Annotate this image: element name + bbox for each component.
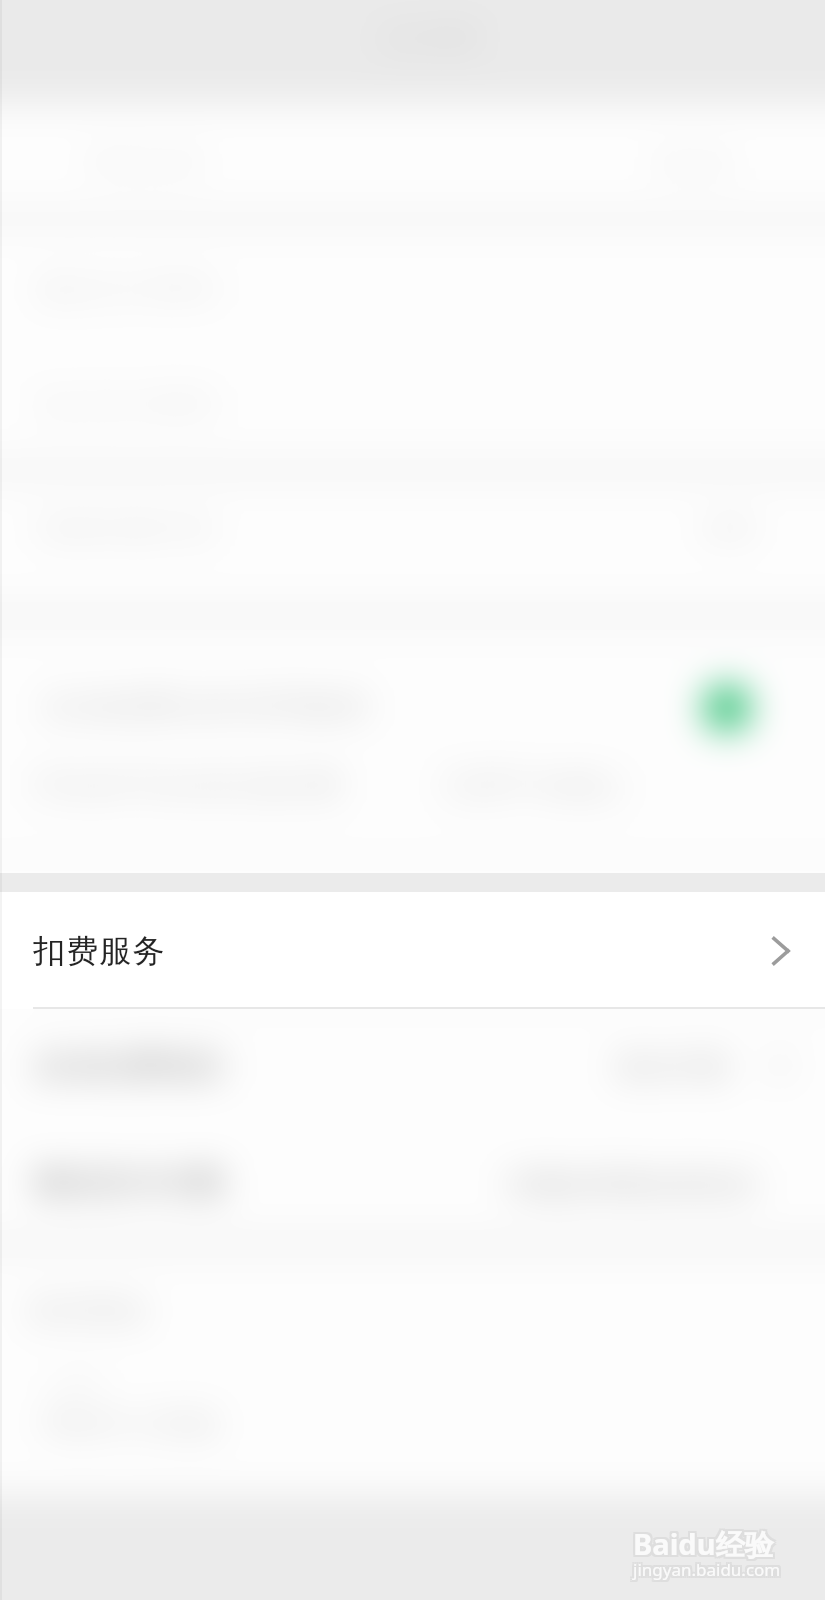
staticText: Baidu经验 bbox=[635, 1522, 776, 1562]
staticText: jingyan.baidu.com bbox=[631, 1560, 779, 1583]
button[interactable]: 微信支付分 bbox=[0, 1125, 825, 1241]
button[interactable]: 自动续费业务管理 bbox=[0, 632, 825, 873]
staticText: 自动扣费项目 bbox=[34, 1046, 226, 1086]
staticText: Baidu经验 bbox=[633, 1526, 774, 1566]
staticText: Baidu经验 bbox=[631, 1526, 772, 1566]
staticText: jingyan.baidu.com bbox=[635, 1556, 783, 1579]
staticText: jingyan.baidu.com bbox=[635, 1558, 783, 1581]
staticText: Baidu经验 bbox=[635, 1524, 776, 1564]
staticText: jingyan.baidu.com bbox=[635, 1560, 783, 1583]
staticText: jingyan.baidu.com bbox=[633, 1558, 781, 1581]
staticText: jingyan.baidu.com bbox=[631, 1556, 779, 1579]
staticText: Baidu经验 bbox=[631, 1524, 772, 1564]
staticText: Baidu经验 bbox=[633, 1524, 774, 1564]
staticText: jingyan.baidu.com bbox=[631, 1558, 779, 1581]
button[interactable]: 自动扣费项目 bbox=[0, 1009, 825, 1125]
staticText: Baidu经验 bbox=[635, 1526, 776, 1566]
staticText: jingyan.baidu.com bbox=[633, 1560, 781, 1583]
staticText: 扣费服务 bbox=[33, 931, 166, 971]
button[interactable]: 扣费服务 bbox=[0, 892, 825, 1009]
staticText: Baidu经验 bbox=[631, 1522, 772, 1562]
staticText: Baidu经验 bbox=[633, 1522, 774, 1562]
staticText: jingyan.baidu.com bbox=[633, 1556, 781, 1579]
